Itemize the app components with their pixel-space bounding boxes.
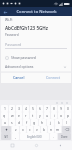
- button[interactable]: Backspace: [62, 126, 71, 133]
- button[interactable]: n: [48, 126, 54, 133]
- button[interactable]: Space: [20, 133, 49, 140]
- staticText: i: [54, 113, 55, 118]
- staticText: n: [50, 127, 53, 132]
- button[interactable]: q: [1, 112, 8, 119]
- staticText: Connect to Network: [16, 9, 57, 15]
- button[interactable]: Shift: [1, 126, 11, 133]
- staticText: AbCdEfGh123 5GHz: [5, 25, 49, 31]
- staticText: Done: [61, 135, 68, 139]
- button[interactable]: e: [16, 112, 22, 119]
- staticText: 3: [18, 106, 20, 111]
- button[interactable]: p: [65, 112, 71, 119]
- staticText: Connect: [46, 75, 61, 80]
- staticText: 5: [32, 106, 34, 111]
- button[interactable]: m: [55, 126, 61, 133]
- staticText: w: [11, 113, 14, 118]
- button[interactable]: w: [9, 112, 15, 119]
- staticText: j: [50, 120, 51, 125]
- button[interactable]: Keyboard tool: [60, 101, 64, 105]
- staticText: g: [33, 120, 36, 125]
- staticText: a: [4, 120, 6, 125]
- button[interactable]: z: [12, 126, 19, 133]
- button[interactable]: s: [9, 119, 15, 126]
- button[interactable]: y: [37, 112, 43, 119]
- staticText: o: [60, 113, 63, 118]
- button[interactable]: b: [41, 126, 47, 133]
- staticText: z: [15, 127, 17, 132]
- button[interactable]: d: [16, 119, 22, 126]
- button[interactable]: Recents: [0, 141, 24, 150]
- staticText: ,: [15, 134, 16, 139]
- staticText: 8: [53, 106, 55, 111]
- button[interactable]: !#1: [1, 133, 11, 140]
- staticText: Cancel: [13, 75, 25, 80]
- button[interactable]: Keyboard tool: [55, 101, 59, 105]
- staticText: b: [43, 127, 46, 132]
- staticText: q: [3, 113, 6, 118]
- button[interactable]: l: [63, 119, 70, 126]
- staticText: v: [36, 127, 38, 132]
- button[interactable]: 7: [44, 105, 50, 112]
- button[interactable]: g: [31, 119, 38, 126]
- button[interactable]: Password: [5, 41, 67, 49]
- button[interactable]: 6: [37, 105, 43, 112]
- staticText: d: [18, 120, 21, 125]
- staticText: p: [67, 113, 70, 118]
- button[interactable]: .: [50, 133, 57, 140]
- button[interactable]: 2: [9, 105, 15, 112]
- button[interactable]: o: [58, 112, 64, 119]
- staticText: Advanced options: [5, 64, 34, 69]
- staticText: h: [41, 120, 44, 125]
- button[interactable]: 3: [16, 105, 22, 112]
- staticText: t: [32, 113, 34, 118]
- staticText: e: [18, 113, 20, 118]
- button[interactable]: r: [23, 112, 29, 119]
- staticText: Wi-Fi: [5, 18, 13, 22]
- button[interactable]: Cancel: [1, 73, 36, 82]
- button[interactable]: Show password: [5, 54, 67, 61]
- staticText: m: [56, 127, 60, 132]
- button[interactable]: Connect: [36, 73, 71, 82]
- button[interactable]: Home: [24, 141, 48, 150]
- button[interactable]: i: [51, 112, 57, 119]
- button[interactable]: a: [2, 119, 8, 126]
- button[interactable]: 0: [65, 105, 71, 112]
- button[interactable]: v: [34, 126, 40, 133]
- staticText: r: [25, 113, 27, 118]
- button[interactable]: h: [39, 119, 46, 126]
- button[interactable]: 1: [1, 105, 8, 112]
- button[interactable]: j: [47, 119, 54, 126]
- staticText: 6: [39, 106, 41, 111]
- button[interactable]: Back: [48, 141, 72, 150]
- button[interactable]: 5: [30, 105, 36, 112]
- button[interactable]: Back: [1, 8, 9, 16]
- button[interactable]: t: [30, 112, 36, 119]
- staticText: x: [22, 127, 24, 132]
- button[interactable]: k: [55, 119, 62, 126]
- staticText: 0: [67, 106, 69, 111]
- staticText: Password: [5, 33, 19, 37]
- button[interactable]: Keyboard tool: [65, 101, 69, 105]
- staticText: 9: [60, 106, 62, 111]
- staticText: s: [11, 120, 13, 125]
- staticText: !#1: [4, 135, 9, 139]
- button[interactable]: 4: [23, 105, 29, 112]
- staticText: 2: [11, 106, 13, 111]
- button[interactable]: x: [20, 126, 26, 133]
- button[interactable]: 8: [51, 105, 57, 112]
- staticText: y: [39, 113, 41, 118]
- button[interactable]: 9: [58, 105, 64, 112]
- button[interactable]: f: [23, 119, 30, 126]
- button[interactable]: Done: [58, 133, 71, 140]
- staticText: l: [66, 120, 67, 125]
- staticText: Show password: [11, 55, 36, 60]
- staticText: Password: [5, 42, 22, 47]
- staticText: k: [58, 120, 60, 125]
- staticText: u: [46, 113, 49, 118]
- staticText: English (UK): [27, 135, 42, 139]
- button[interactable]: ,: [12, 133, 19, 140]
- button[interactable]: Advanced options: [5, 63, 67, 70]
- staticText: f: [26, 120, 28, 125]
- button[interactable]: u: [44, 112, 50, 119]
- button[interactable]: c: [27, 126, 33, 133]
